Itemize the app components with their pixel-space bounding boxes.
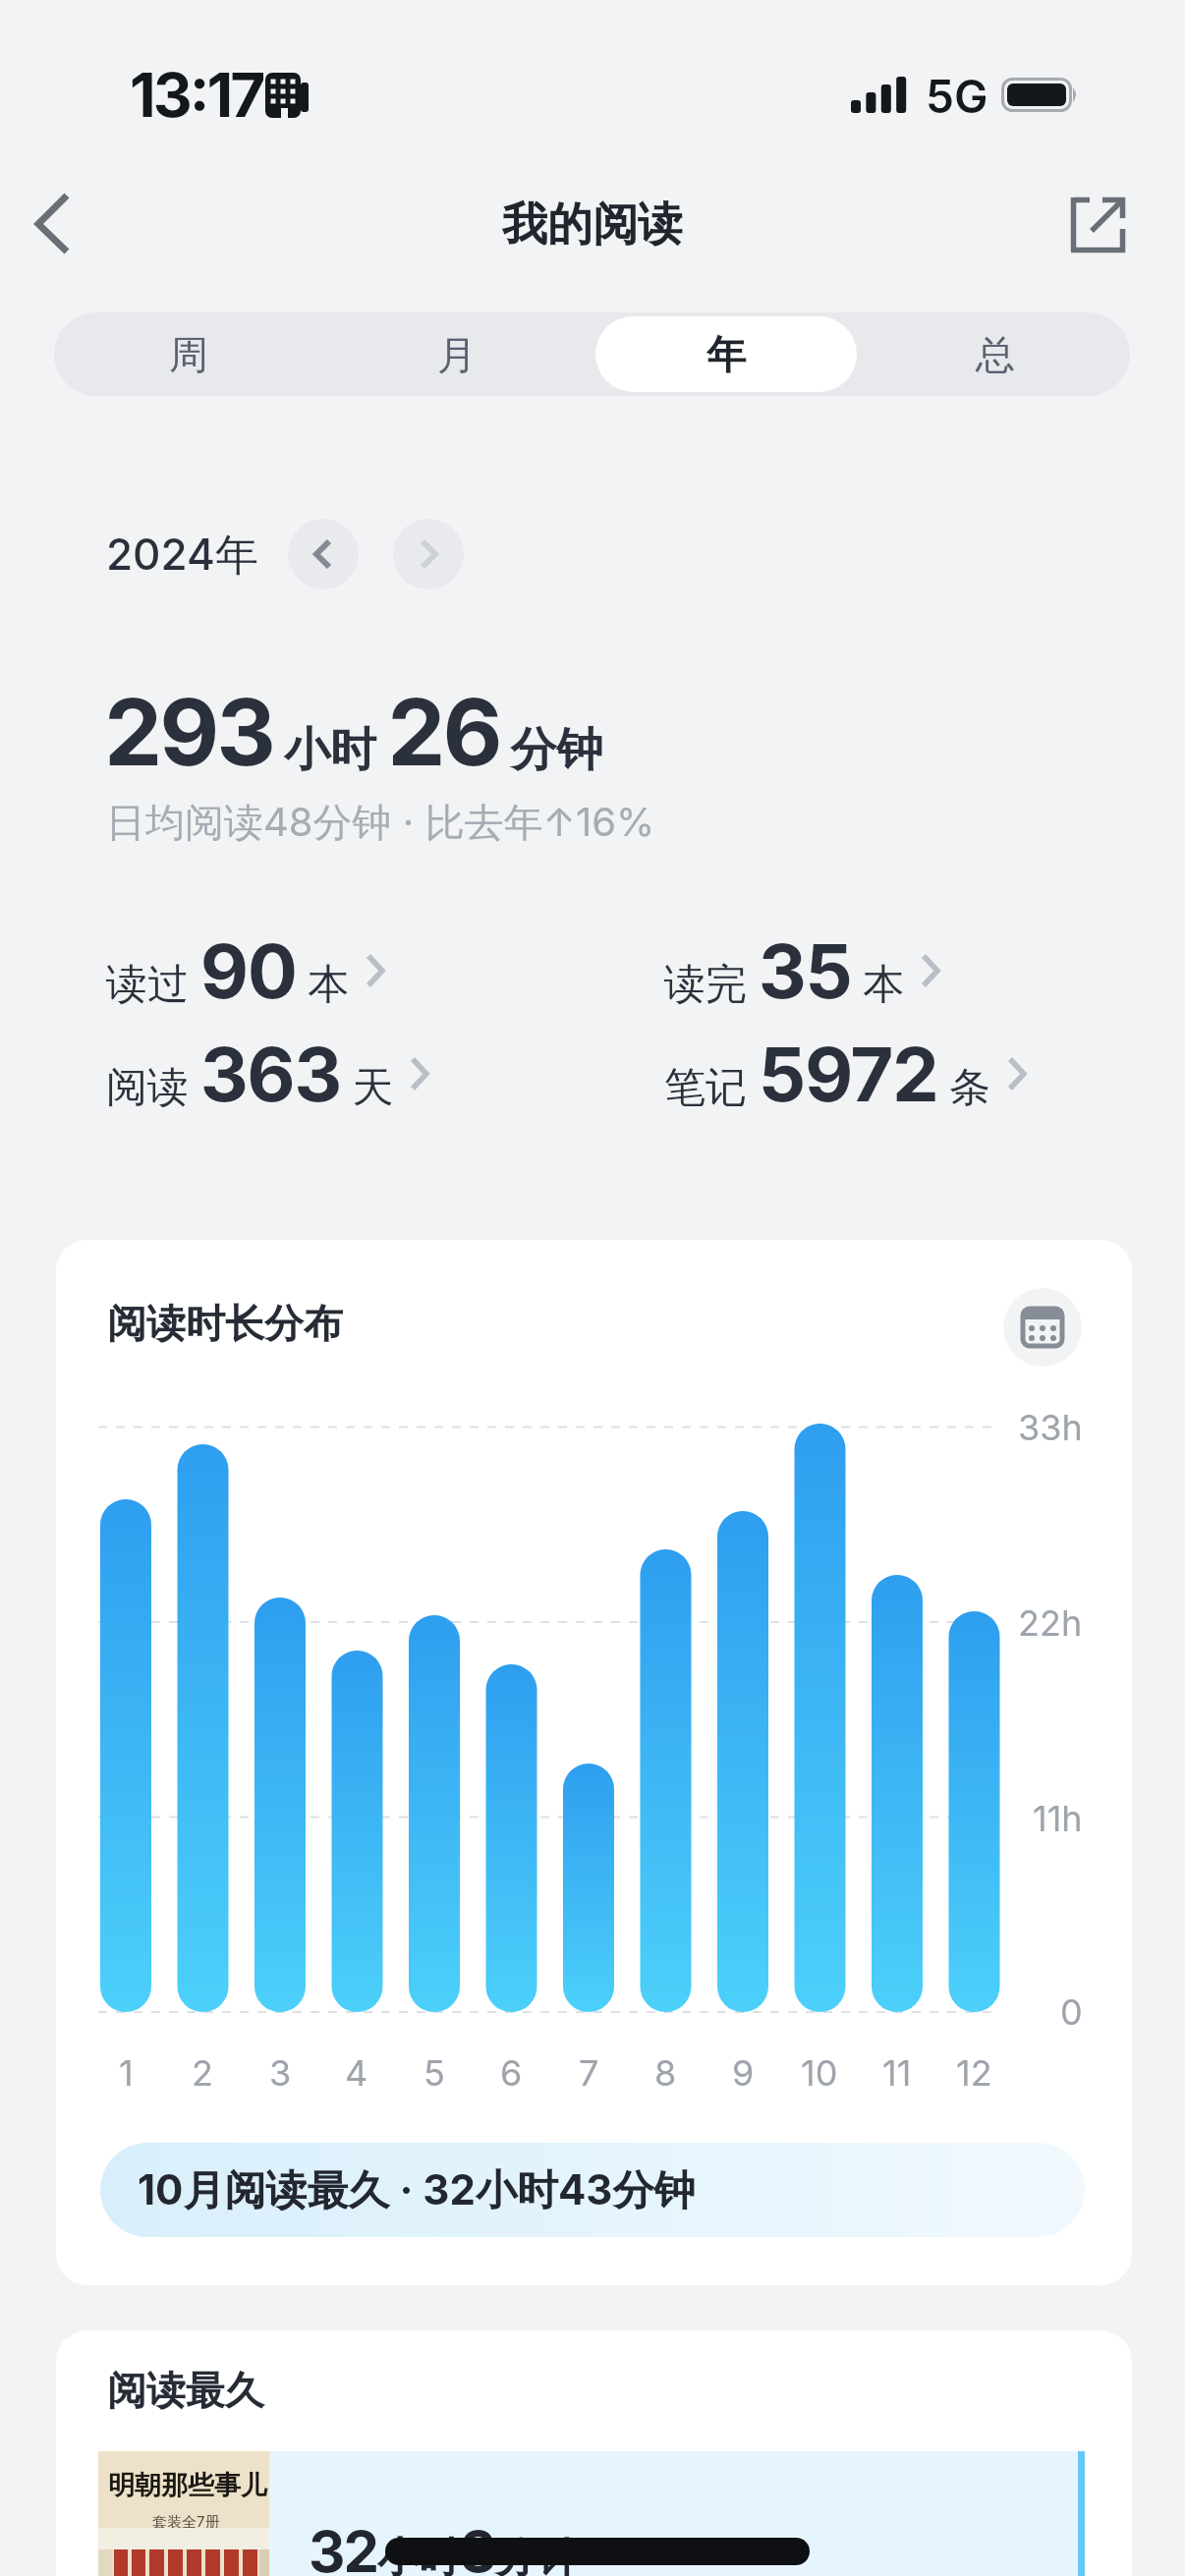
button[interactable]: 年 xyxy=(595,316,857,392)
staticText: 8 xyxy=(654,2051,677,2095)
staticText: 笔记 5972 条 xyxy=(664,1029,991,1119)
staticText: 5 xyxy=(423,2051,445,2095)
staticText: 明朝那些事儿 xyxy=(108,2469,267,2502)
staticText: 年 xyxy=(706,330,746,379)
staticText: 7 xyxy=(579,2051,599,2095)
staticText: 读完 35 本 xyxy=(664,925,905,1016)
button[interactable]: 读过 90 本 xyxy=(106,925,387,1016)
staticText: 11 xyxy=(882,2051,912,2095)
staticText: 32小时3分钟 xyxy=(309,2517,578,2576)
staticText: 33h xyxy=(1018,1406,1083,1449)
staticText: 9 xyxy=(732,2051,755,2095)
button[interactable]: 笔记 5972 条 xyxy=(664,1029,1029,1119)
staticText: 日均阅读48分钟 · 比去年↑16% xyxy=(106,798,655,848)
button[interactable] xyxy=(25,182,109,266)
staticText: 293 小时 26 分钟 xyxy=(104,676,603,788)
staticText: 2024年 xyxy=(106,528,258,583)
staticText: 2 xyxy=(192,2051,213,2095)
staticText: 11h xyxy=(1033,1797,1083,1840)
staticText: 1 xyxy=(119,2051,134,2095)
staticText: 4 xyxy=(345,2051,368,2095)
staticText: 12 xyxy=(956,2051,992,2095)
staticText: 套装全7册 xyxy=(152,2512,220,2531)
staticText: 总 xyxy=(976,330,1015,379)
staticText: 13:17 xyxy=(130,58,263,132)
staticText: 10月阅读最久 · 32小时43分钟 xyxy=(138,2164,696,2216)
staticText: 阅读 363 天 xyxy=(106,1029,394,1119)
staticText: 读过 90 本 xyxy=(106,925,350,1016)
staticText: 5G xyxy=(926,69,988,124)
button[interactable]: 总 xyxy=(861,312,1130,396)
button[interactable]: 月 xyxy=(322,312,592,396)
button[interactable]: 读完 35 本 xyxy=(664,925,942,1016)
button[interactable] xyxy=(1057,185,1138,265)
button[interactable] xyxy=(288,519,359,589)
staticText: 阅读最久 xyxy=(107,2366,264,2415)
button[interactable]: 明朝那些事儿 xyxy=(98,2451,1085,2576)
staticText: 周 xyxy=(169,330,208,379)
staticText: 阅读时长分布 xyxy=(107,1299,343,1348)
button[interactable] xyxy=(1003,1288,1082,1367)
button[interactable] xyxy=(393,519,464,589)
staticText: 我的阅读 xyxy=(502,196,683,253)
button[interactable]: 阅读 363 天 xyxy=(106,1029,431,1119)
staticText: 0 xyxy=(1060,1990,1083,2034)
staticText: 3 xyxy=(269,2051,292,2095)
button[interactable]: 周 xyxy=(54,312,322,396)
staticText: 月 xyxy=(437,330,477,379)
staticText: 10 xyxy=(801,2051,838,2095)
staticText: 22h xyxy=(1018,1601,1083,1645)
staticText: 6 xyxy=(500,2051,523,2095)
